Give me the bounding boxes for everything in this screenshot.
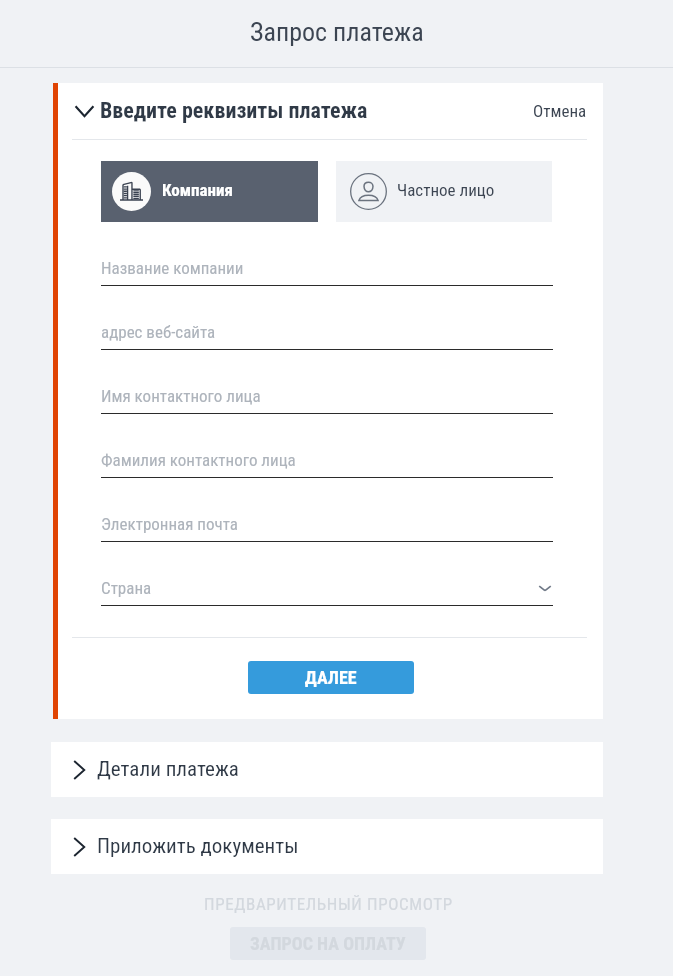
button[interactable]: ДАЛЕЕ	[248, 661, 414, 694]
staticText: ЗАПРОС НА ОПЛАТУ	[250, 933, 406, 954]
button[interactable]: Детали платежа	[51, 742, 603, 797]
staticText: Электронная почта	[101, 514, 238, 534]
staticText: Введите реквизиты платежа	[100, 98, 368, 124]
button[interactable]: адрес веб-сайта	[101, 286, 553, 350]
staticText: Название компании	[101, 258, 244, 278]
button[interactable]: Компания	[101, 161, 318, 222]
button[interactable]: ЗАПРОС НА ОПЛАТУ	[230, 927, 426, 960]
button[interactable]: Отмена	[533, 101, 587, 121]
staticText: ДАЛЕЕ	[305, 667, 357, 688]
staticText: Частное лицо	[397, 180, 495, 200]
button[interactable]: Название компании	[101, 222, 553, 286]
button[interactable]: Частное лицо	[336, 161, 552, 222]
button[interactable]: Страна	[101, 542, 553, 606]
staticText: Имя контактного лица	[101, 386, 261, 406]
button[interactable]: Приложить документы	[51, 819, 603, 874]
staticText: Компания	[162, 180, 233, 200]
staticText: Детали платежа	[97, 757, 239, 782]
other: Collapse section	[74, 99, 95, 123]
staticText: Отмена	[533, 101, 587, 121]
staticText: Страна	[101, 578, 152, 598]
button[interactable]: Фамилия контактного лица	[101, 414, 553, 478]
button[interactable]: Имя контактного лица	[101, 350, 553, 414]
staticText: Приложить документы	[97, 834, 299, 859]
staticText: ПРЕДВАРИТЕЛЬНЫЙ ПРОСМОТР	[204, 894, 453, 914]
button[interactable]: Collapse section	[58, 83, 603, 139]
staticText: адрес веб-сайта	[101, 322, 216, 342]
staticText: Фамилия контактного лица	[101, 450, 296, 470]
button[interactable]: Электронная почта	[101, 478, 553, 542]
staticText: Запрос платежа	[250, 17, 424, 47]
